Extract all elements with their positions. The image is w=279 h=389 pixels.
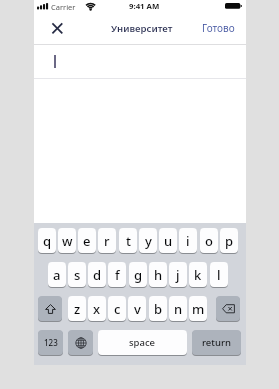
staticText: b [154,300,163,318]
staticText: Университет [111,22,173,35]
button[interactable]: p [220,228,238,253]
staticText: l [217,266,221,284]
button[interactable]: y [139,228,157,253]
staticText: p [225,232,234,250]
button[interactable]: j [169,262,187,287]
staticText: s [74,266,81,284]
staticText: u [164,232,173,250]
staticText: j [176,266,180,284]
button[interactable]: d [88,262,106,287]
button[interactable]: i [179,228,197,253]
button[interactable]: h [149,262,167,287]
staticText: d [93,266,102,284]
staticText: m [192,300,205,318]
staticText: y [145,232,152,250]
staticText: c [114,300,121,318]
staticText: e [83,232,91,250]
button[interactable]: m [189,296,207,321]
staticText: o [205,232,213,250]
staticText: z [74,300,81,318]
button[interactable]: l [210,262,228,287]
button[interactable]: k [189,262,207,287]
staticText: n [174,300,183,318]
button[interactable]: t [119,228,137,253]
button[interactable]: a [48,262,66,287]
staticText: x [93,300,101,318]
button[interactable] [38,296,62,321]
staticText: f [115,266,120,284]
button[interactable] [68,330,93,355]
staticText: g [134,266,143,284]
button[interactable]: b [149,296,167,321]
button[interactable]: u [159,228,177,253]
button[interactable]: v [128,296,146,321]
staticText: return [202,336,231,349]
button[interactable]: o [200,228,218,253]
button[interactable]: w [58,228,76,253]
staticText: 9:41 AM [129,1,160,12]
staticText: i [186,232,190,250]
button[interactable]: return [192,330,241,355]
staticText: Готово [202,21,235,35]
button[interactable]: 123 [38,330,63,355]
button[interactable]: Готово [188,18,235,38]
button[interactable]: f [108,262,126,287]
button[interactable]: e [78,228,96,253]
staticText: q [43,232,52,250]
staticText: r [104,232,110,250]
button[interactable]: x [88,296,106,321]
button[interactable]: space [98,330,187,355]
button[interactable] [216,296,240,321]
staticText: space [129,336,156,349]
staticText: 123 [44,337,58,348]
staticText: h [154,266,163,284]
staticText: t [126,232,131,250]
button[interactable]: c [108,296,126,321]
button[interactable] [46,17,69,39]
button[interactable]: g [129,262,147,287]
staticText: v [134,300,141,318]
staticText: a [53,266,61,284]
staticText: w [62,232,73,250]
button[interactable]: s [68,262,86,287]
staticText: k [194,266,202,284]
button[interactable]: r [98,228,116,253]
button[interactable]: n [169,296,187,321]
staticText: Carrier [51,2,76,12]
button[interactable]: q [38,228,56,253]
button[interactable]: z [68,296,86,321]
